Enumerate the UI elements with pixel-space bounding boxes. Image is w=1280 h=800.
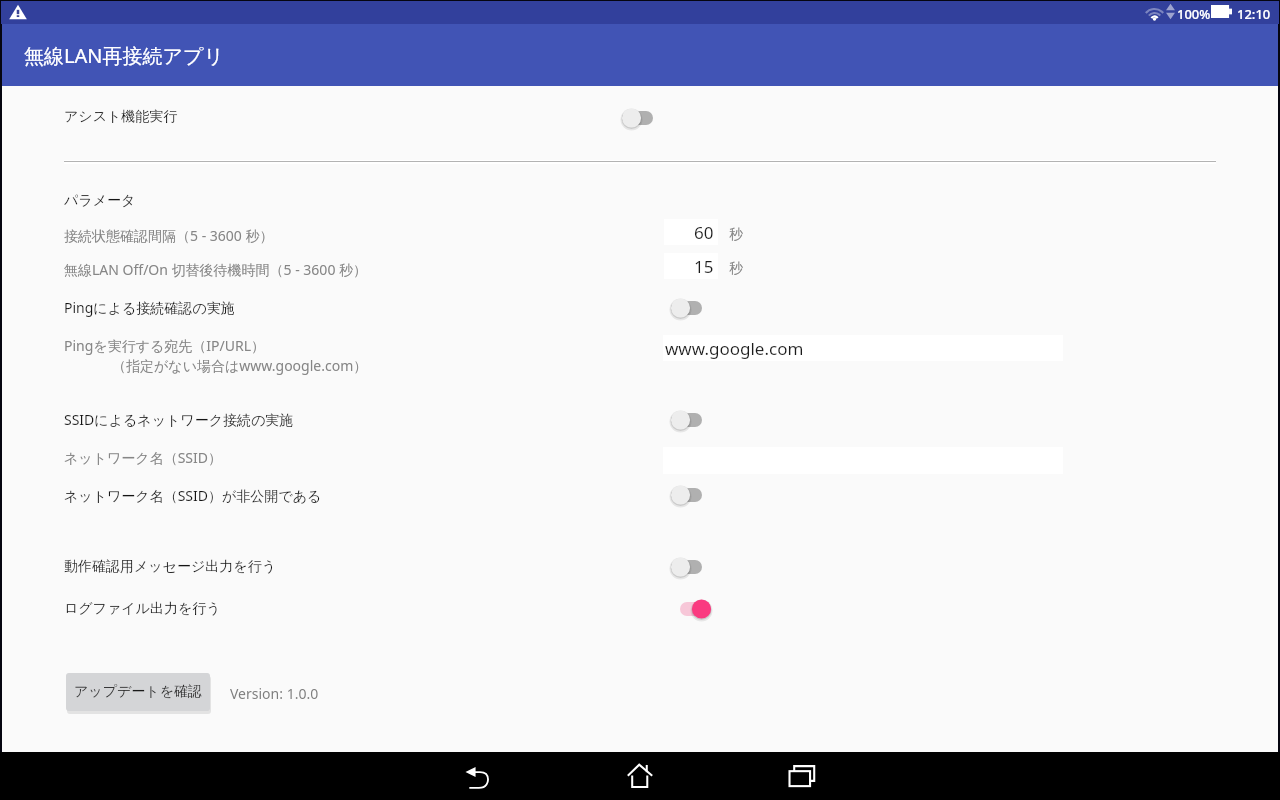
button[interactable]: Off (663, 547, 711, 587)
button[interactable]: 無線LAN再接続アプリ (2, 24, 1278, 86)
staticText: ネットワーク名（SSID） (64, 448, 222, 467)
button[interactable]: Off (663, 288, 711, 328)
staticText: 15 (694, 255, 714, 278)
staticText: 無線LAN Off/On 切替後待機時間（5 - 3600 秒） (64, 260, 368, 279)
staticText: www.google.com (665, 337, 804, 360)
staticText: 秒 (729, 260, 743, 278)
staticText: アップデートを確認 (74, 683, 202, 701)
staticText: 秒 (729, 226, 743, 244)
button[interactable]: Home (604, 752, 676, 800)
staticText: Version: 1.0.0 (230, 684, 319, 703)
button[interactable]: Off (663, 475, 711, 515)
staticText: 12:10 (1237, 5, 1271, 23)
staticText: （指定がない場合はwww.google.com） (112, 356, 368, 375)
staticText: SSIDによるネットワーク接続の実施 (64, 410, 294, 429)
staticText: 100% (1177, 5, 1211, 23)
staticText: パラメータ (64, 192, 136, 210)
staticText: 60 (694, 221, 714, 244)
staticText: 接続状態確認間隔（5 - 3600 秒） (64, 226, 274, 245)
button[interactable]: Off (663, 400, 711, 440)
staticText: Pingによる接続確認の実施 (64, 298, 235, 317)
staticText: 無線LAN再接続アプリ (24, 42, 224, 69)
button[interactable]: Off (614, 98, 662, 138)
staticText: Pingを実行する宛先（IP/URL） (64, 336, 266, 355)
staticText: ネットワーク名（SSID）が非公開である (64, 486, 322, 505)
button[interactable]: アップデートを確認 (66, 673, 210, 711)
button[interactable]: www.google.com (663, 335, 1063, 361)
button[interactable]: 60 (664, 219, 718, 245)
button[interactable]: Recent apps (766, 752, 838, 800)
staticText: アシスト機能実行 (64, 108, 178, 126)
staticText: 動作確認用メッセージ出力を行う (64, 558, 276, 576)
button[interactable]: Back (442, 752, 514, 800)
button[interactable]: On (672, 589, 720, 629)
button[interactable]: 15 (664, 253, 718, 279)
staticText: ログファイル出力を行う (64, 600, 221, 618)
